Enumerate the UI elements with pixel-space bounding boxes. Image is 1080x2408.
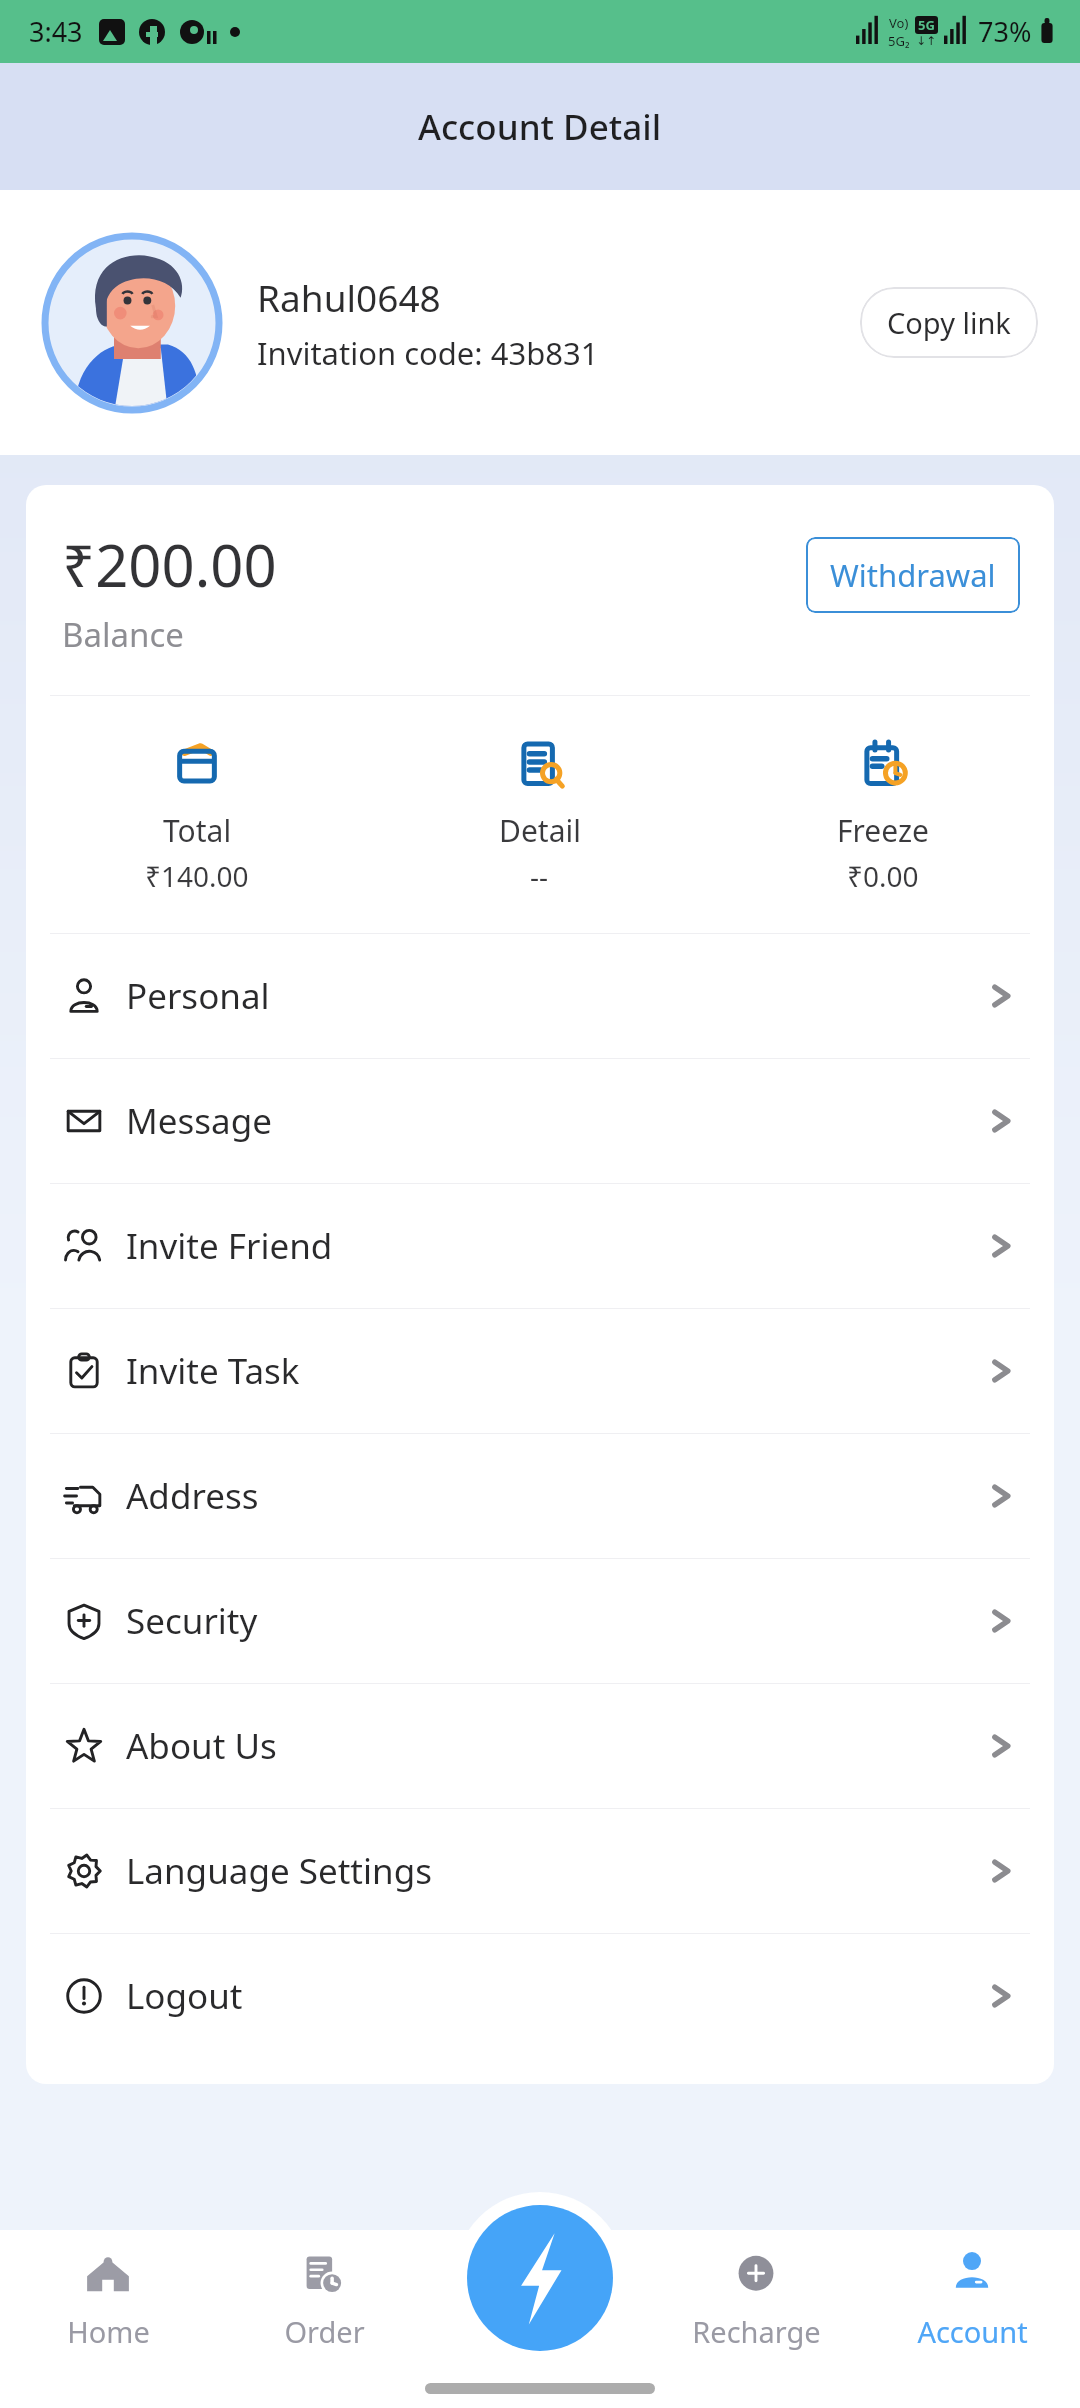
staticText: Home — [67, 2312, 150, 2351]
button[interactable]: Recharge — [648, 2240, 864, 2351]
staticText: ↓↑ — [916, 34, 937, 48]
staticText: Total — [163, 810, 232, 851]
button[interactable]: Invite Friend — [26, 1184, 1054, 1308]
button[interactable]: Invite Task — [26, 1309, 1054, 1433]
button[interactable]: Security — [26, 1559, 1054, 1683]
button[interactable]: Language Settings — [26, 1809, 1054, 1933]
staticText: Freeze — [837, 810, 929, 851]
staticText: Invite Friend — [126, 1222, 984, 1270]
button[interactable]: Total — [26, 730, 368, 899]
button[interactable]: Address — [26, 1434, 1054, 1558]
staticText: Personal — [126, 972, 984, 1020]
button[interactable]: Logout — [26, 1934, 1054, 2058]
staticText: Balance — [62, 612, 184, 657]
button[interactable]: Copy link — [860, 287, 1038, 358]
staticText: ₹0.00 — [847, 857, 919, 895]
staticText: Detail — [499, 810, 581, 851]
button[interactable]: Account — [864, 2240, 1080, 2351]
staticText: -- — [530, 857, 549, 895]
button[interactable]: Personal — [26, 934, 1054, 1058]
button[interactable]: Message — [26, 1059, 1054, 1183]
staticText: Logout — [126, 1972, 984, 2020]
staticText: Security — [126, 1597, 984, 1645]
staticText: Recharge — [692, 2312, 821, 2351]
button[interactable]: Home — [0, 2240, 216, 2351]
button[interactable]: Detail — [368, 730, 711, 899]
button[interactable]: Order — [216, 2240, 432, 2351]
staticText: Account — [917, 2312, 1028, 2351]
button[interactable]: Withdrawal — [806, 537, 1020, 613]
staticText: Copy link — [887, 303, 1011, 342]
staticText: Language Settings — [126, 1847, 984, 1895]
staticText: Withdrawal — [830, 554, 996, 596]
staticText: 5G₂ — [888, 32, 910, 50]
staticText: About Us — [126, 1722, 984, 1770]
staticText: Rahul0648 — [257, 272, 441, 322]
staticText: Address — [126, 1472, 984, 1520]
button[interactable]: Quick action — [454, 2192, 626, 2364]
staticText: Invite Task — [126, 1347, 984, 1395]
staticText: Message — [126, 1097, 984, 1145]
staticText: 73% — [978, 13, 1032, 50]
staticText: Order — [284, 2312, 365, 2351]
staticText: ₹140.00 — [145, 857, 249, 895]
button[interactable]: About Us — [26, 1684, 1054, 1808]
staticText: Vo) — [889, 14, 909, 32]
staticText: Invitation code: 43b831 — [257, 332, 599, 374]
staticText: 5G — [918, 16, 935, 34]
staticText: 3:43 — [29, 13, 83, 50]
staticText: Account Detail — [418, 103, 662, 151]
staticText: ₹200.00 — [62, 525, 277, 604]
button[interactable]: Freeze — [711, 730, 1054, 899]
